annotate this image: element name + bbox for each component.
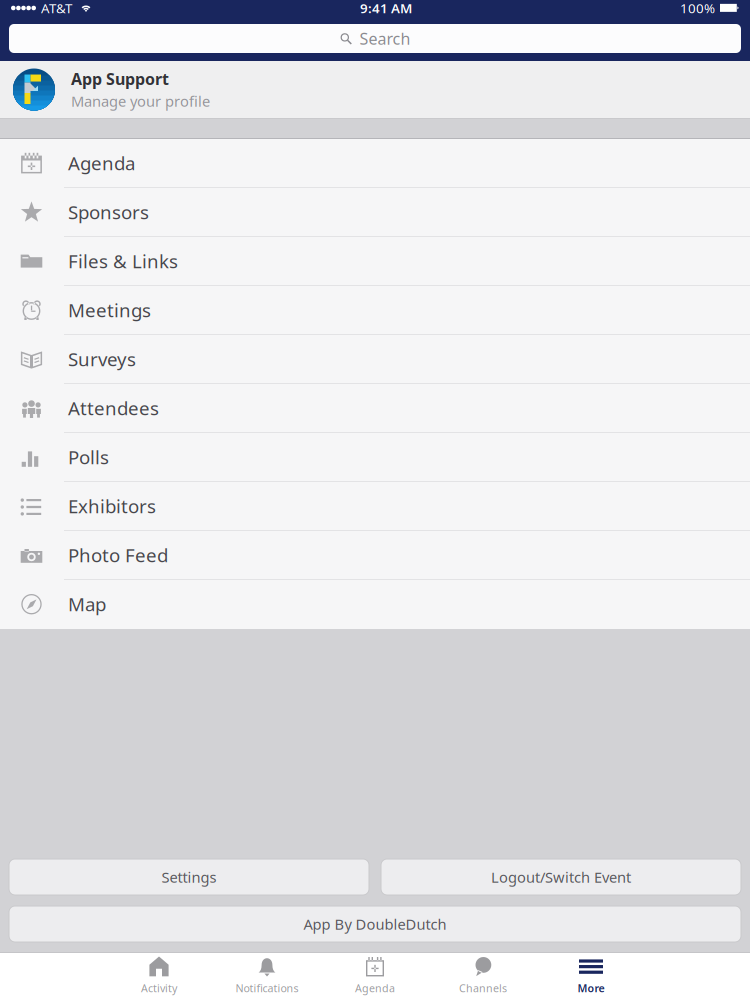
staticText: Agenda <box>355 981 395 995</box>
staticText: Logout/Switch Event <box>491 867 631 887</box>
button[interactable]: Meetings <box>0 286 750 335</box>
button[interactable]: Files & Links <box>0 237 750 286</box>
button[interactable]: Surveys <box>0 335 750 384</box>
staticText: Manage your profile <box>71 91 210 111</box>
button[interactable]: More <box>537 953 645 1000</box>
button[interactable]: Map <box>0 580 750 629</box>
button[interactable]: App Support <box>0 61 750 118</box>
staticText: Channels <box>459 981 507 995</box>
staticText: Exhibitors <box>68 494 156 518</box>
button[interactable]: Sponsors <box>0 188 750 237</box>
button[interactable]: Agenda <box>321 953 429 1000</box>
button[interactable]: Photo Feed <box>0 531 750 580</box>
button[interactable]: Settings <box>9 859 369 895</box>
staticText: Files & Links <box>68 249 178 273</box>
staticText: Attendees <box>68 396 159 420</box>
staticText: Settings <box>161 867 216 887</box>
staticText: Polls <box>68 445 109 469</box>
staticText: App By DoubleDutch <box>303 914 446 934</box>
staticText: Photo Feed <box>68 543 168 567</box>
button[interactable]: Attendees <box>0 384 750 433</box>
staticText: Search <box>359 28 410 49</box>
staticText: Notifications <box>235 981 298 995</box>
button[interactable]: Agenda <box>0 139 750 188</box>
button[interactable]: Search <box>9 24 741 53</box>
staticText: App Support <box>71 68 169 89</box>
staticText: 9:41 AM <box>360 0 412 17</box>
staticText: Map <box>68 592 106 616</box>
button[interactable]: Exhibitors <box>0 482 750 531</box>
staticText: 100% <box>680 0 715 17</box>
button[interactable]: Channels <box>429 953 537 1000</box>
button[interactable]: Polls <box>0 433 750 482</box>
staticText: Sponsors <box>68 200 149 224</box>
staticText: Meetings <box>68 298 151 322</box>
button[interactable]: Logout/Switch Event <box>381 859 741 895</box>
staticText: More <box>577 981 604 995</box>
button[interactable]: Notifications <box>213 953 321 1000</box>
staticText: Activity <box>141 981 177 995</box>
staticText: Agenda <box>68 151 135 175</box>
button[interactable]: App By DoubleDutch <box>9 906 741 942</box>
staticText: AT&T <box>41 0 72 17</box>
staticText: Surveys <box>68 347 136 371</box>
button[interactable]: Activity <box>105 953 213 1000</box>
